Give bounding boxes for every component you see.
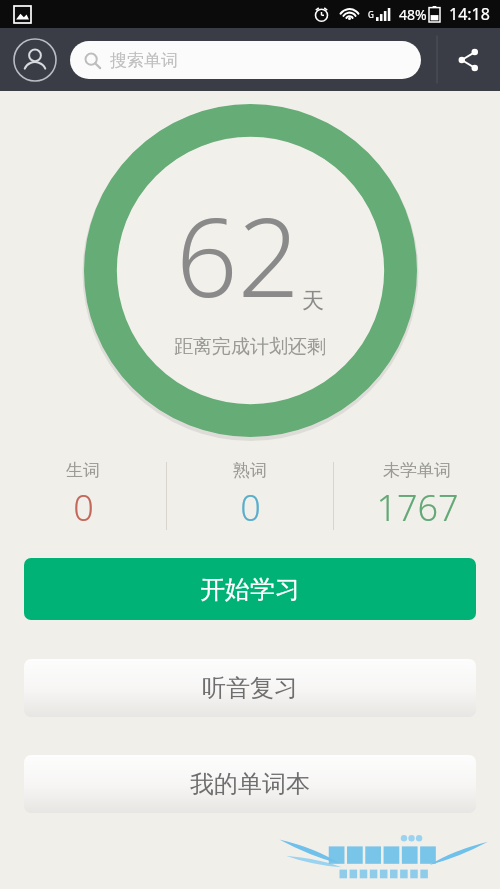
staticText: G	[368, 9, 374, 20]
staticText: 0	[73, 483, 94, 532]
staticText: 未学单词	[383, 460, 451, 481]
staticText: 天	[302, 287, 324, 315]
staticText: 62	[176, 182, 300, 329]
staticText: 生词	[66, 460, 100, 481]
staticText: 48%	[399, 5, 427, 24]
staticText: 距离完成计划还剩	[174, 335, 326, 359]
staticText: 1767	[376, 483, 459, 532]
button[interactable]: 我的单词本	[24, 755, 476, 813]
button[interactable]: Share	[437, 28, 500, 91]
staticText: 我的单词本	[190, 769, 310, 799]
staticText: 听音复习	[202, 673, 298, 703]
button[interactable]: Profile	[0, 28, 70, 91]
button[interactable]: 搜索单词	[70, 41, 421, 79]
staticText: 14:18	[449, 3, 490, 25]
staticText: 熟词	[233, 460, 267, 481]
staticText: 开始学习	[200, 574, 300, 605]
staticText: 0	[240, 483, 261, 532]
button[interactable]: 开始学习	[24, 558, 476, 620]
button[interactable]: 熟词	[167, 456, 333, 536]
staticText: 搜索单词	[110, 50, 178, 71]
button[interactable]: 生词	[0, 456, 166, 536]
button[interactable]: 未学单词	[334, 456, 500, 536]
button[interactable]: 听音复习	[24, 659, 476, 717]
